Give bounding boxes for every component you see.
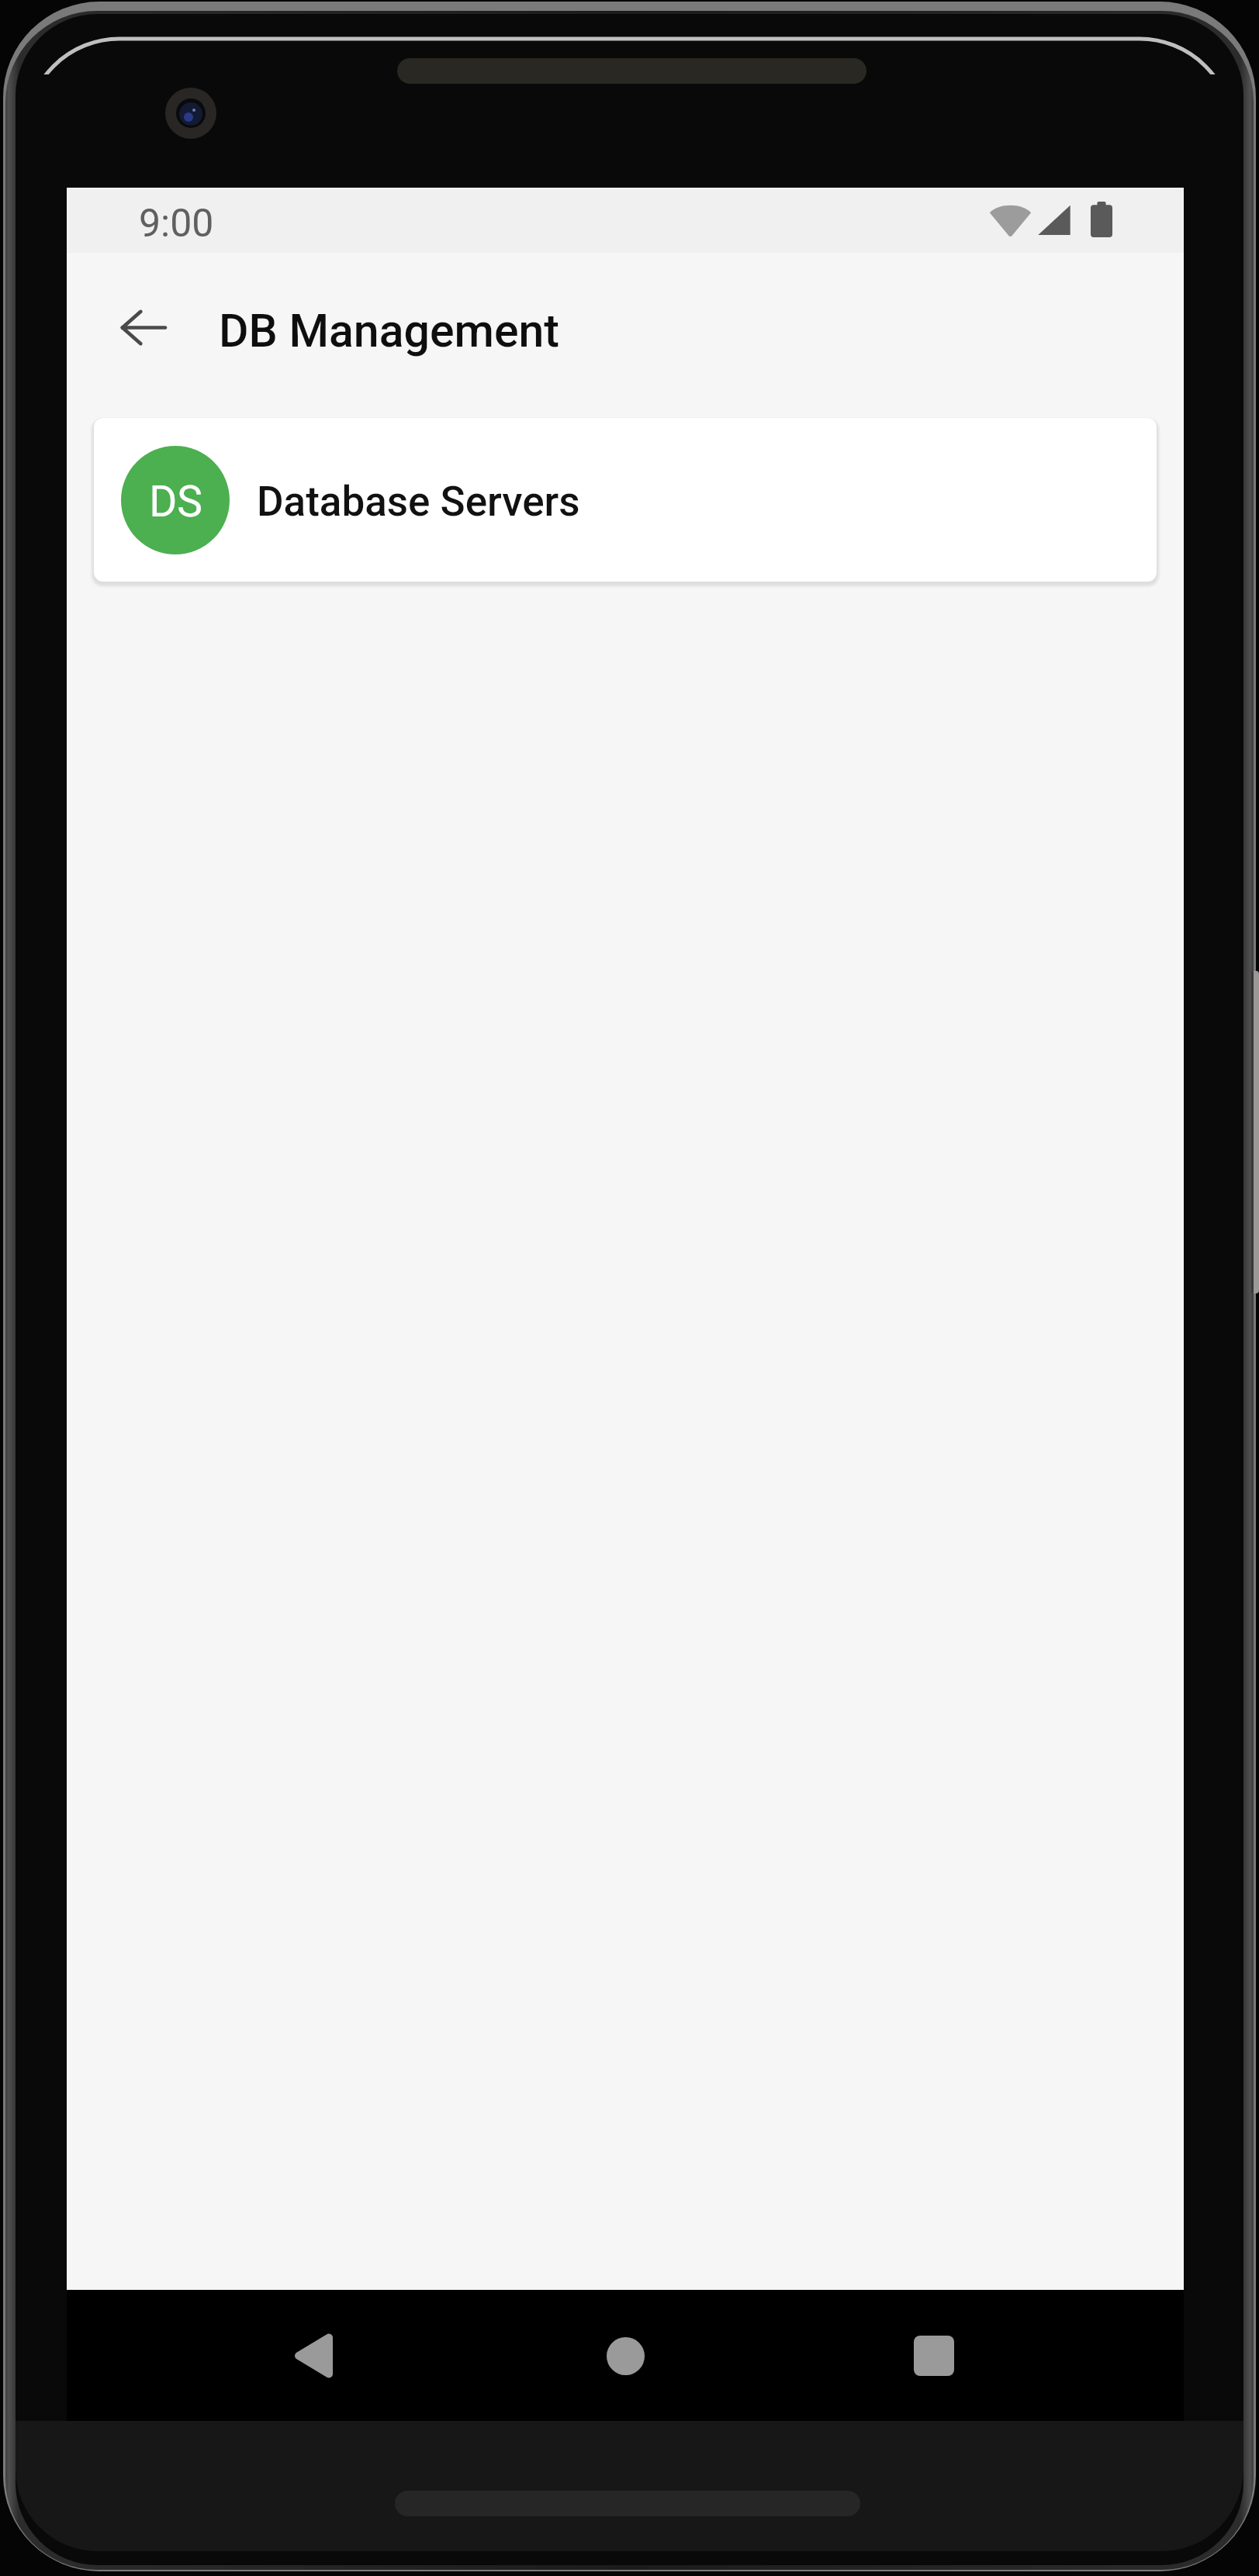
button[interactable]: Navigate up (90, 275, 195, 380)
staticText: DS (149, 477, 202, 527)
button[interactable]: Home (579, 2309, 672, 2402)
staticText: Database Servers (257, 478, 580, 526)
staticText: 9:00 (139, 201, 214, 247)
button[interactable]: Back (265, 2309, 358, 2402)
button[interactable]: DS (94, 418, 1157, 582)
staticText: DB Management (219, 304, 560, 357)
button[interactable]: Recent apps (887, 2309, 981, 2402)
